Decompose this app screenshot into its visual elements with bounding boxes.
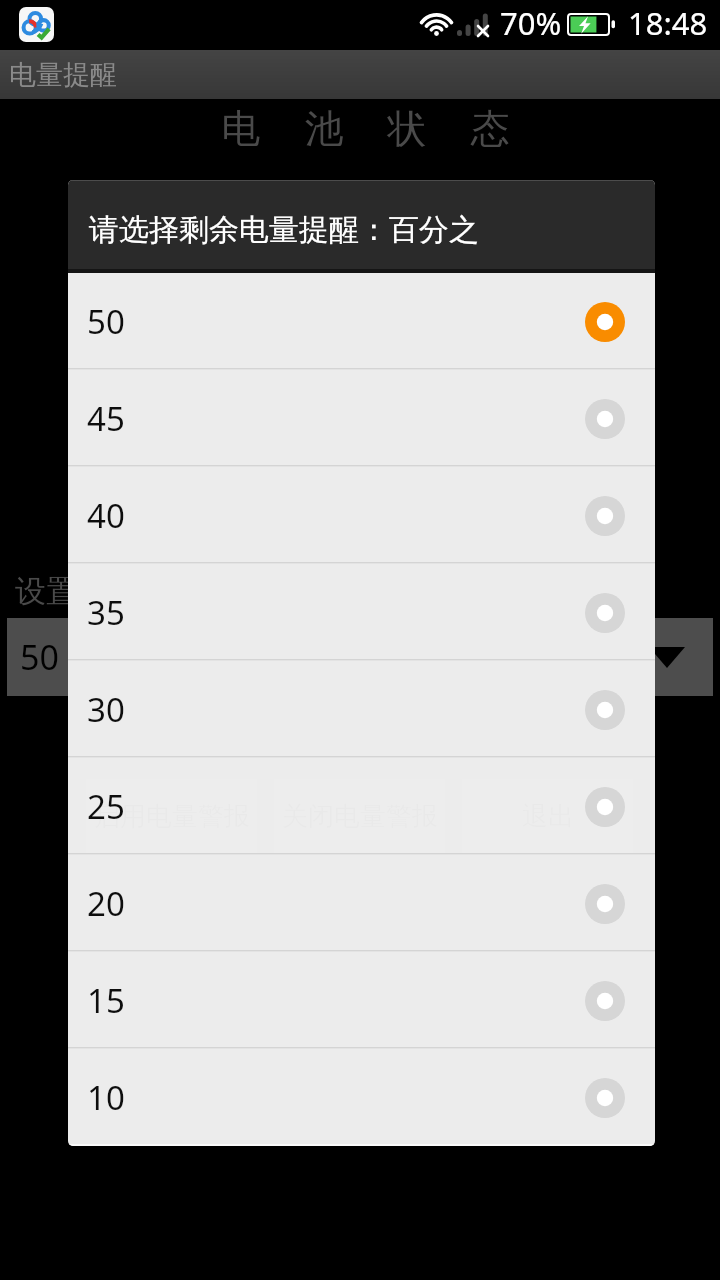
staticText: 请选择剩余电量提醒：百分之	[89, 211, 479, 249]
button[interactable]: 30	[68, 661, 655, 758]
button[interactable]: 45	[68, 370, 655, 467]
other: Select 20 percent	[585, 884, 625, 924]
staticText: 20	[87, 881, 125, 926]
button[interactable]: 25	[68, 758, 655, 855]
other: Select 45 percent	[585, 399, 625, 439]
staticText: 18:48	[628, 2, 708, 44]
button[interactable]: 35	[68, 564, 655, 661]
button[interactable]: 15	[68, 952, 655, 1049]
staticText: 30	[87, 687, 125, 732]
staticText: 启用电量警报	[94, 800, 250, 833]
other: Selected: 50 percent	[585, 302, 625, 342]
staticText: 启用电量警报	[94, 800, 250, 833]
other: Open dropdown	[649, 647, 685, 668]
staticText: 40	[87, 493, 125, 538]
staticText: 15	[87, 978, 125, 1023]
other: Select 15 percent	[585, 981, 625, 1021]
staticText: 50	[20, 634, 59, 680]
button[interactable]: 40	[68, 467, 655, 564]
other: Select 10 percent	[585, 1078, 625, 1118]
button[interactable]: 50	[7, 618, 713, 696]
other: App icon	[19, 7, 54, 42]
button[interactable]: 启用电量警报	[86, 779, 257, 854]
staticText: 10	[87, 1075, 125, 1120]
button[interactable]: 退出	[462, 779, 633, 854]
staticText: 电 池 状 态	[14, 100, 720, 153]
staticText: 45	[87, 396, 125, 441]
button[interactable]: 20	[68, 855, 655, 952]
other: Select 40 percent	[585, 496, 625, 536]
button[interactable]: 10	[68, 1049, 655, 1146]
staticText: 35	[87, 590, 125, 635]
staticText: 50	[87, 299, 125, 344]
staticText: 70%	[500, 2, 562, 44]
staticText: 设置	[15, 572, 77, 611]
other: Select 25 percent	[585, 787, 625, 827]
staticText: 电量提醒	[9, 58, 117, 92]
staticText: 25	[87, 784, 125, 829]
other: Select 30 percent	[585, 690, 625, 730]
other: Select 35 percent	[585, 593, 625, 633]
button[interactable]: 50	[68, 273, 655, 370]
